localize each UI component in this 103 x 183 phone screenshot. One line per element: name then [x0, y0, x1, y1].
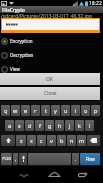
button[interactable]: OK: [0, 73, 100, 85]
button[interactable]: i: [71, 105, 80, 116]
staticText: k: [78, 122, 81, 129]
button[interactable]: n: [67, 135, 76, 146]
button[interactable]: Fine: [80, 153, 100, 165]
staticText: v: [50, 137, 53, 144]
staticText: f: [39, 122, 41, 129]
staticText: u: [64, 107, 68, 114]
button[interactable]: Shift: [1, 135, 15, 146]
button[interactable]: r: [31, 105, 40, 116]
button[interactable]: View: [0, 62, 103, 76]
staticText: e: [24, 107, 28, 114]
staticText: z: [20, 137, 23, 144]
staticText: p: [94, 107, 98, 114]
button[interactable]: m: [77, 135, 86, 146]
staticText: i: [75, 107, 77, 114]
button[interactable]: o: [81, 105, 90, 116]
button[interactable]: Voice input: [19, 153, 27, 165]
button[interactable]: Close: [0, 87, 100, 100]
staticText: .: [75, 156, 77, 163]
button[interactable]: Backspace: [87, 135, 100, 146]
staticText: Fine: [86, 156, 95, 162]
button[interactable]: FileCrypto: [0, 6, 103, 13]
button[interactable]: ,: [13, 153, 18, 165]
staticText: w: [13, 107, 18, 114]
button[interactable]: a: [5, 120, 14, 131]
button[interactable]: .: [72, 153, 79, 165]
staticText: Encryption: [10, 38, 33, 44]
staticText: ,: [15, 156, 17, 163]
staticText: r: [34, 107, 37, 114]
staticText: g: [48, 122, 52, 129]
button[interactable]: s: [15, 120, 24, 131]
staticText: 18:22: [89, 0, 102, 6]
staticText: OK: [46, 76, 54, 83]
button[interactable]: Encryption: [0, 34, 103, 48]
button[interactable]: Recent apps: [70, 167, 94, 181]
button[interactable]: l: [85, 120, 94, 131]
button[interactable]: b: [57, 135, 66, 146]
staticText: q: [4, 107, 8, 114]
button[interactable]: u: [61, 105, 70, 116]
button[interactable]: k: [75, 120, 84, 131]
button[interactable]: g: [45, 120, 54, 131]
staticText: s: [18, 122, 21, 129]
staticText: d: [28, 122, 32, 129]
button[interactable]: j: [65, 120, 74, 131]
button[interactable]: w: [11, 105, 20, 116]
button[interactable]: q: [1, 105, 10, 116]
button[interactable]: [28, 153, 71, 165]
staticText: x: [30, 137, 33, 144]
button[interactable]: t: [41, 105, 50, 116]
button[interactable]: p: [91, 105, 100, 116]
staticText: n: [70, 137, 74, 144]
staticText: FileCrypto: [2, 7, 25, 13]
button[interactable]: d: [25, 120, 34, 131]
button[interactable]: z: [16, 135, 26, 146]
button[interactable]: v: [47, 135, 56, 146]
button[interactable]: c: [37, 135, 46, 146]
staticText: Close: [44, 90, 57, 97]
button[interactable]: [2, 19, 99, 30]
staticText: a: [8, 122, 12, 129]
button[interactable]: e: [21, 105, 30, 116]
staticText: m: [79, 137, 85, 144]
button[interactable]: Home: [42, 167, 66, 181]
button[interactable]: f: [35, 120, 44, 131]
button[interactable]: Decryption: [0, 48, 103, 62]
button[interactable]: Back: [12, 168, 36, 182]
button[interactable]: x: [27, 135, 36, 146]
staticText: l: [89, 122, 91, 129]
staticText: b: [60, 137, 64, 144]
staticText: /sdcard/Pictures/2013-03-01T_46.32.jpg: [1, 13, 92, 20]
staticText: View: [10, 66, 20, 72]
staticText: h: [58, 122, 62, 129]
staticText: t: [45, 107, 47, 114]
staticText: c: [40, 137, 43, 144]
staticText: j: [69, 122, 71, 129]
button[interactable]: ?123: [1, 153, 12, 165]
staticText: ?123: [2, 156, 12, 162]
staticText: o: [84, 107, 88, 114]
staticText: Decryption: [10, 52, 34, 58]
staticText: y: [54, 107, 57, 114]
button[interactable]: h: [55, 120, 64, 131]
button[interactable]: y: [51, 105, 60, 116]
